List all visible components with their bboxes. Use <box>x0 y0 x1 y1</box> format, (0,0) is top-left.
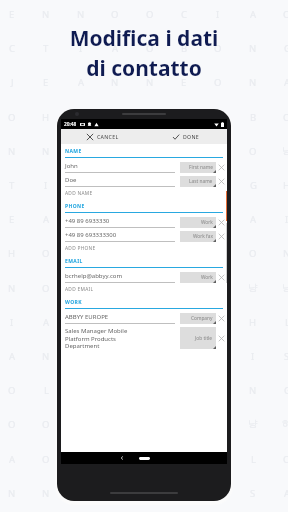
staticText: L <box>285 316 288 329</box>
staticText: +49 89 6933330 <box>65 217 110 225</box>
button[interactable]: Remove Work fax <box>216 229 227 243</box>
staticText: H <box>214 453 222 466</box>
staticText: I <box>44 179 48 192</box>
staticText: G <box>181 453 188 466</box>
staticText: John <box>65 162 78 170</box>
staticText: B <box>147 179 154 192</box>
staticText: O <box>111 453 119 466</box>
button[interactable]: +49 89 693333300 <box>65 229 227 243</box>
staticText: A <box>43 213 50 226</box>
staticText: I <box>79 42 83 55</box>
staticText: N <box>42 487 50 500</box>
button[interactable]: CANCEL <box>61 129 144 144</box>
staticText: Modifica i dati <box>20 24 268 53</box>
staticText: I <box>182 145 186 158</box>
staticText: B <box>78 453 85 466</box>
button[interactable]: Remove Work <box>216 270 227 284</box>
button[interactable]: ADD EMAIL <box>61 284 227 295</box>
staticText: N <box>214 213 222 226</box>
staticText: H <box>283 179 288 192</box>
button[interactable]: Back <box>119 455 125 461</box>
staticText: 하 <box>282 418 288 430</box>
staticText: NAME <box>65 148 82 155</box>
staticText: O <box>77 316 85 329</box>
staticText: N <box>180 316 188 329</box>
staticText: First name <box>189 164 213 171</box>
button[interactable]: Last name <box>180 176 216 187</box>
staticText: C <box>112 282 119 295</box>
staticText: C <box>9 42 16 55</box>
staticText: O <box>111 145 119 158</box>
staticText: O <box>180 213 188 226</box>
staticText: Doe <box>65 176 77 184</box>
staticText: N <box>77 8 85 21</box>
staticText: O <box>111 487 119 500</box>
staticText: 냥 <box>282 282 288 294</box>
staticText: A <box>284 487 288 500</box>
button[interactable]: First name <box>180 162 216 173</box>
staticText: E <box>9 213 15 226</box>
staticText: A <box>181 282 188 295</box>
staticText: 냥 <box>248 418 258 430</box>
staticText: G <box>284 42 288 55</box>
button[interactable]: Remove Last name <box>216 174 227 188</box>
staticText: L <box>44 384 49 397</box>
button[interactable]: Job title <box>180 327 216 349</box>
button[interactable]: Remove Job title <box>216 325 227 351</box>
staticText: A <box>78 179 85 192</box>
staticText: +49 89 693333300 <box>65 231 117 239</box>
button[interactable]: John <box>65 160 227 174</box>
button[interactable]: Home <box>139 457 150 460</box>
button[interactable]: Work fax <box>180 231 216 242</box>
staticText: WORK <box>65 299 82 306</box>
staticText: CANCEL <box>97 133 119 140</box>
button[interactable]: DONE <box>144 129 227 144</box>
staticText: PHONE <box>65 203 85 210</box>
staticText: E <box>9 8 15 21</box>
staticText: L <box>79 247 84 260</box>
staticText: 好 <box>213 111 223 123</box>
button[interactable]: Remove First name <box>216 160 227 174</box>
button[interactable]: Remove Work <box>216 215 227 229</box>
staticText: H <box>249 316 257 329</box>
staticText: O <box>214 282 222 295</box>
button[interactable]: Work <box>180 272 216 283</box>
staticText: G <box>215 316 222 329</box>
button[interactable]: Work <box>180 217 216 228</box>
staticText: O <box>77 111 85 124</box>
staticText: di contatto <box>20 54 268 83</box>
staticText: G <box>250 179 257 192</box>
staticText: 냥 <box>248 282 258 294</box>
staticText: O <box>146 8 154 21</box>
button[interactable]: Sales Manager Mobile Platform Products D… <box>65 325 227 351</box>
staticText: O <box>8 111 16 124</box>
button[interactable]: Company <box>180 313 216 324</box>
button[interactable]: Doe <box>65 174 227 188</box>
button[interactable]: +49 89 6933330 <box>65 215 227 229</box>
staticText: N <box>42 145 50 158</box>
button[interactable]: Remove Company <box>216 311 227 325</box>
button[interactable]: bcrhelp@abbyy.com <box>65 270 227 284</box>
staticText: A <box>9 453 16 466</box>
button[interactable]: ABBYY EUROPE <box>65 311 227 325</box>
staticText: O <box>146 316 154 329</box>
button[interactable]: ADD PHONE <box>61 243 227 254</box>
staticText: L <box>113 111 118 124</box>
button[interactable]: ADD NAME <box>61 188 227 199</box>
staticText: G <box>284 384 288 397</box>
staticText: O <box>214 42 222 55</box>
staticText: I <box>216 8 220 21</box>
staticText: bcrhelp@abbyy.com <box>65 272 123 280</box>
staticText: I <box>148 282 152 295</box>
staticText: N <box>249 76 257 89</box>
